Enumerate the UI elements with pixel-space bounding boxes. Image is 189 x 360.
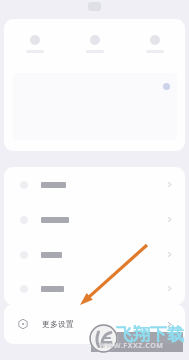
button[interactable]	[4, 272, 185, 305]
button[interactable]: 更多设置	[4, 304, 185, 344]
button[interactable]	[4, 19, 65, 69]
button[interactable]	[65, 19, 125, 69]
staticText: 更多设置	[42, 319, 74, 329]
staticText: WWW.FXXZ.COM	[99, 341, 164, 351]
button[interactable]	[4, 202, 185, 237]
button[interactable]	[4, 237, 185, 272]
button[interactable]	[125, 19, 185, 69]
staticText: 飞翔下载	[116, 324, 184, 345]
button[interactable]	[4, 167, 185, 202]
